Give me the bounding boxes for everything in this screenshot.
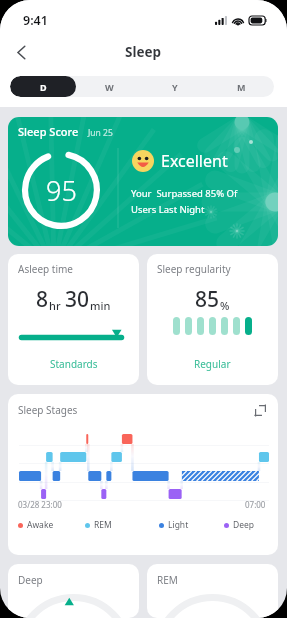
staticText: Sleep Score xyxy=(18,124,79,139)
staticText: 30 xyxy=(65,285,90,314)
button[interactable]: Sleep Score xyxy=(8,117,278,246)
staticText: 03/28 23:00 xyxy=(18,499,62,510)
staticText: 9:41 xyxy=(23,12,48,29)
staticText: Deep xyxy=(233,519,255,531)
staticText: Jun 25 xyxy=(88,127,113,139)
staticText: % xyxy=(220,298,230,313)
staticText: min xyxy=(90,298,111,313)
staticText: 8 xyxy=(36,285,49,314)
staticText: W xyxy=(105,81,114,93)
staticText: 85 xyxy=(195,285,220,314)
button[interactable]: D xyxy=(10,76,76,97)
button[interactable]: REM xyxy=(147,564,278,618)
staticText: hr xyxy=(49,298,61,313)
staticText: Light xyxy=(168,519,189,531)
button[interactable]: Expand chart xyxy=(249,399,271,421)
button[interactable]: REM xyxy=(85,519,112,531)
staticText: Deep xyxy=(18,573,43,587)
button[interactable]: Back xyxy=(6,37,36,67)
staticText: REM xyxy=(94,519,112,531)
staticText: REM xyxy=(157,573,178,587)
staticText: Sleep xyxy=(125,43,162,61)
button[interactable]: Asleep time xyxy=(8,254,139,385)
staticText: 07:00 xyxy=(245,499,266,510)
button[interactable]: M xyxy=(208,76,274,97)
staticText: Users Last Night xyxy=(131,203,205,216)
button[interactable]: W xyxy=(76,76,142,97)
button[interactable]: Y xyxy=(142,76,208,97)
staticText: Sleep Stages xyxy=(18,403,78,417)
staticText: Sleep regularity xyxy=(157,262,231,276)
staticText: M xyxy=(237,81,246,93)
staticText: D xyxy=(40,81,47,93)
button[interactable]: Deep xyxy=(224,519,255,531)
button[interactable]: Light xyxy=(159,519,189,531)
staticText: Standards xyxy=(50,357,98,371)
button[interactable]: Awake xyxy=(18,519,54,531)
staticText: Awake xyxy=(27,519,54,531)
button[interactable]: Sleep regularity xyxy=(147,254,278,385)
staticText: 95 xyxy=(46,172,77,209)
staticText: Excellent xyxy=(161,150,228,172)
staticText: Y xyxy=(172,81,178,93)
staticText: Regular xyxy=(194,357,231,371)
staticText: Asleep time xyxy=(18,262,73,276)
button[interactable]: Deep xyxy=(8,564,139,618)
staticText: Your Surpassed 85% Of xyxy=(131,187,238,200)
